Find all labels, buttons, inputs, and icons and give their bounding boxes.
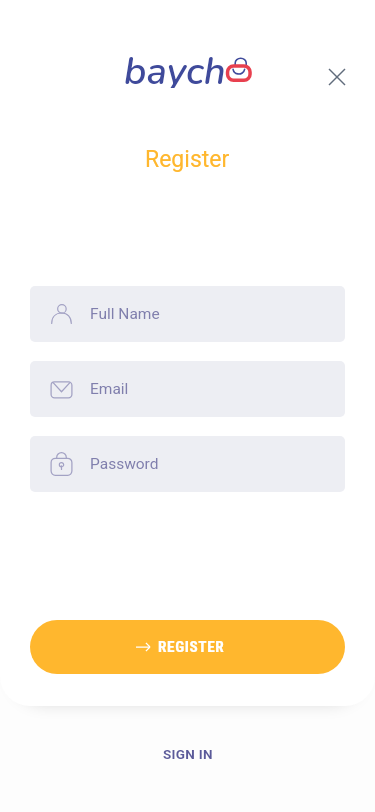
button[interactable]: Email	[30, 361, 345, 417]
button[interactable]: Password	[30, 436, 345, 492]
staticText: Email	[90, 380, 129, 398]
button[interactable]: Close	[315, 55, 359, 99]
staticText: SIGN IN	[163, 746, 213, 762]
button[interactable]: SIGN IN	[143, 735, 233, 773]
staticText: Password	[90, 455, 159, 473]
button[interactable]: REGISTER	[30, 620, 345, 674]
staticText: Register	[145, 146, 230, 173]
button[interactable]: Full Name	[30, 286, 345, 342]
staticText: baych	[124, 46, 226, 88]
staticText: Full Name	[90, 305, 160, 323]
staticText: REGISTER	[158, 638, 225, 656]
